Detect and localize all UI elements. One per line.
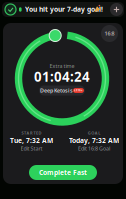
staticText: GOAL bbox=[88, 130, 100, 136]
staticText: Deep Ketosis bbox=[40, 87, 73, 94]
staticText: STARTED bbox=[21, 130, 41, 136]
staticText: You hit your 7-day goal! bbox=[25, 5, 103, 14]
staticText: Complete Fast bbox=[39, 168, 87, 177]
button[interactable]: Deep Ketosis bbox=[39, 85, 85, 95]
staticText: 16:8 bbox=[104, 30, 114, 37]
button[interactable]: 16:8 bbox=[101, 25, 118, 42]
staticText: 01:04:24 bbox=[34, 68, 90, 85]
staticText: Zero+ bbox=[74, 88, 83, 92]
button[interactable]: You hit your 7-day goal! bbox=[2, 2, 124, 17]
staticText: Extra time bbox=[49, 62, 74, 70]
staticText: Tue, 7:32 AM bbox=[10, 136, 53, 145]
button[interactable]: More bbox=[110, 3, 123, 16]
staticText: Edit 16:8 Goal bbox=[78, 145, 110, 152]
button[interactable]: Edit 16:8 Goal bbox=[78, 145, 110, 152]
button[interactable]: Edit Start bbox=[20, 145, 42, 152]
staticText: Edit Start bbox=[20, 145, 42, 152]
staticText: Today, 7:32 AM bbox=[69, 136, 119, 145]
button[interactable]: Complete Fast bbox=[29, 165, 97, 180]
